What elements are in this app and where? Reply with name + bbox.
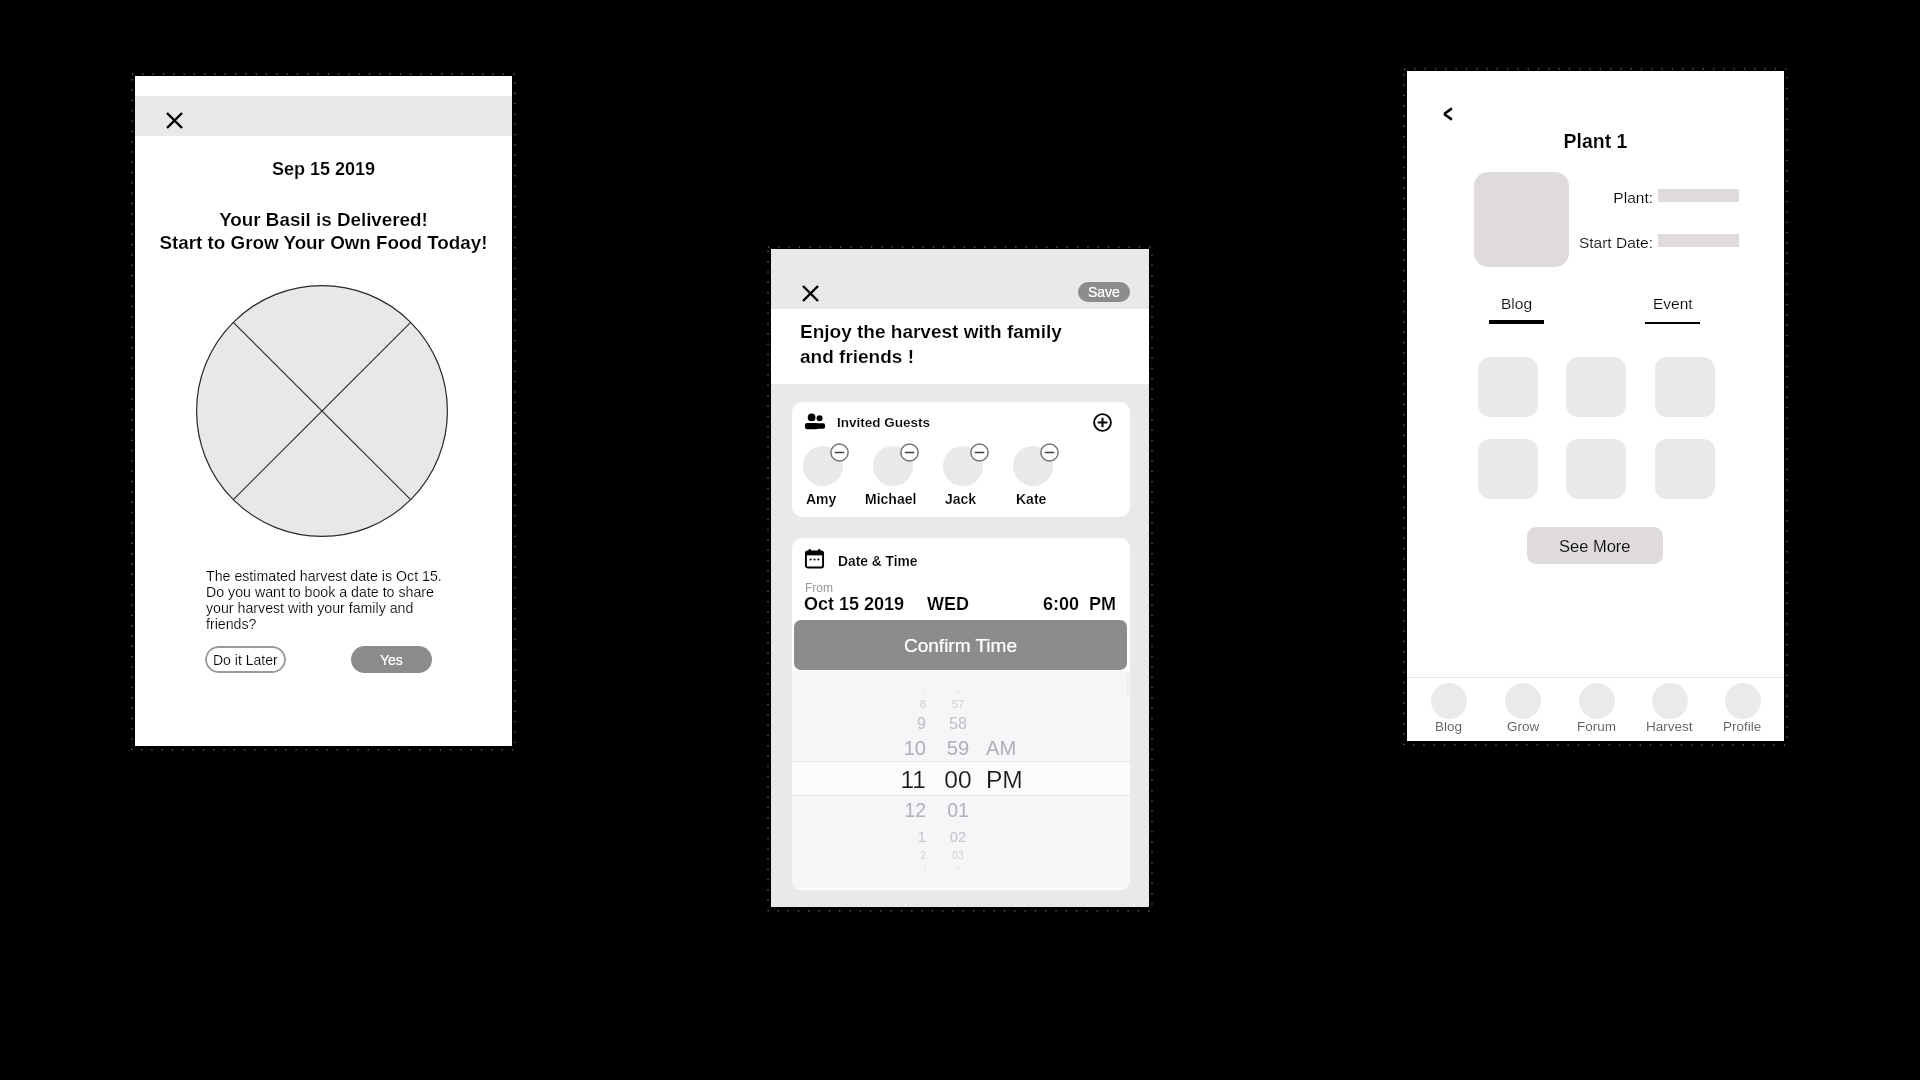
staticText: Save <box>1088 284 1120 300</box>
button[interactable]: Confirm Time <box>794 620 1127 670</box>
staticText: Grow <box>1507 719 1540 734</box>
button[interactable]: Remove Kate <box>1040 443 1059 462</box>
staticText: Amy <box>806 491 837 507</box>
staticText: 00 <box>928 766 988 793</box>
button[interactable]: Remove Amy <box>830 443 849 462</box>
staticText: Sep 15 2019 <box>135 159 512 179</box>
button[interactable]: Blog post 1 <box>1478 357 1538 417</box>
staticText: Plant: <box>1557 189 1653 206</box>
staticText: 03 <box>928 850 988 861</box>
staticText: Plant 1 <box>1407 130 1784 152</box>
button[interactable]: Event <box>1643 289 1702 329</box>
staticText: WED <box>927 594 969 614</box>
button[interactable]: Blog <box>1412 677 1486 741</box>
staticText: 6:00 PM <box>1043 594 1117 614</box>
button[interactable]: See More <box>1527 527 1663 564</box>
button[interactable]: Blog post 3 <box>1655 357 1715 417</box>
staticText: From <box>805 581 833 594</box>
staticText: 10 <box>866 737 926 759</box>
staticText: 01 <box>928 799 988 821</box>
button[interactable]: Close <box>159 105 189 135</box>
button[interactable]: Blog post 4 <box>1478 439 1538 499</box>
button[interactable]: Profile <box>1706 677 1779 741</box>
staticText: The estimated harvest date is Oct 15. Do… <box>206 568 442 632</box>
staticText: Oct 15 2019 <box>804 594 905 614</box>
button[interactable]: Blog post 5 <box>1566 439 1626 499</box>
staticText: Forum <box>1577 719 1617 734</box>
staticText: Yes <box>380 652 403 668</box>
staticText: 2 <box>866 850 926 861</box>
staticText: 59 <box>928 737 988 759</box>
staticText: Profile <box>1723 719 1762 734</box>
staticText: Blog <box>1435 719 1463 734</box>
button[interactable]: Do it Later <box>205 646 286 673</box>
button[interactable]: Yes <box>351 646 432 673</box>
button[interactable]: Back <box>1435 101 1461 127</box>
staticText: Michael <box>865 491 917 507</box>
button[interactable]: Save <box>1078 282 1130 302</box>
staticText: 9 <box>866 714 926 732</box>
staticText: 02 <box>928 829 988 845</box>
staticText: 11 <box>866 766 926 793</box>
button[interactable]: Close <box>795 278 825 308</box>
button[interactable]: Remove Michael <box>900 443 919 462</box>
staticText: Blog <box>1501 295 1533 312</box>
staticText: 12 <box>866 799 926 821</box>
button[interactable]: Add guest <box>1093 413 1112 432</box>
staticText: PM <box>986 766 1046 793</box>
staticText: See More <box>1559 537 1631 555</box>
staticText: Kate <box>1016 491 1047 507</box>
button[interactable]: Harvest <box>1633 677 1706 741</box>
staticText: 1 <box>866 829 926 845</box>
button[interactable]: Blog <box>1487 289 1546 329</box>
staticText: Invited Guests <box>837 415 931 430</box>
button[interactable]: Blog post 6 <box>1655 439 1715 499</box>
button[interactable]: Remove Jack <box>970 443 989 462</box>
staticText: Harvest <box>1646 719 1693 734</box>
staticText: Your Basil is Delivered! Start to Grow Y… <box>135 209 512 253</box>
staticText: Event <box>1653 295 1693 312</box>
staticText: Date & Time <box>838 554 918 569</box>
staticText: 8 <box>866 698 926 711</box>
button[interactable]: Blog post 2 <box>1566 357 1626 417</box>
staticText: 58 <box>928 714 988 732</box>
button[interactable]: Forum <box>1560 677 1633 741</box>
staticText: Jack <box>945 491 977 507</box>
staticText: AM <box>986 737 1046 759</box>
staticText: Start Date: <box>1557 234 1653 251</box>
staticText: Do it Later <box>213 652 278 668</box>
staticText: 57 <box>928 698 988 711</box>
button[interactable]: Grow <box>1486 677 1560 741</box>
staticText: Enjoy the harvest with family and friend… <box>800 321 1062 367</box>
staticText: Confirm Time <box>904 635 1017 656</box>
